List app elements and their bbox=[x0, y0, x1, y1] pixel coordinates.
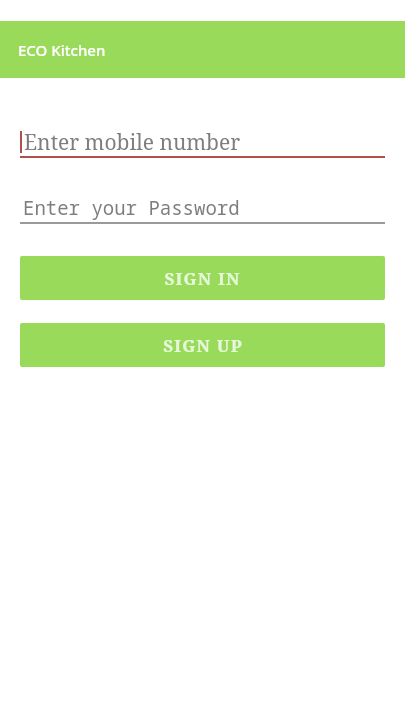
staticText: SIGN IN bbox=[164, 267, 241, 290]
staticText: SIGN UP bbox=[163, 334, 243, 357]
button[interactable]: SIGN IN bbox=[20, 256, 385, 300]
staticText: Enter mobile number bbox=[24, 128, 241, 157]
button[interactable]: Enter your Password bbox=[20, 192, 385, 224]
staticText: ECO Kitchen bbox=[18, 40, 106, 60]
staticText: Enter your Password bbox=[23, 195, 240, 221]
button[interactable]: Enter mobile number bbox=[20, 126, 385, 158]
button[interactable]: SIGN UP bbox=[20, 323, 385, 367]
